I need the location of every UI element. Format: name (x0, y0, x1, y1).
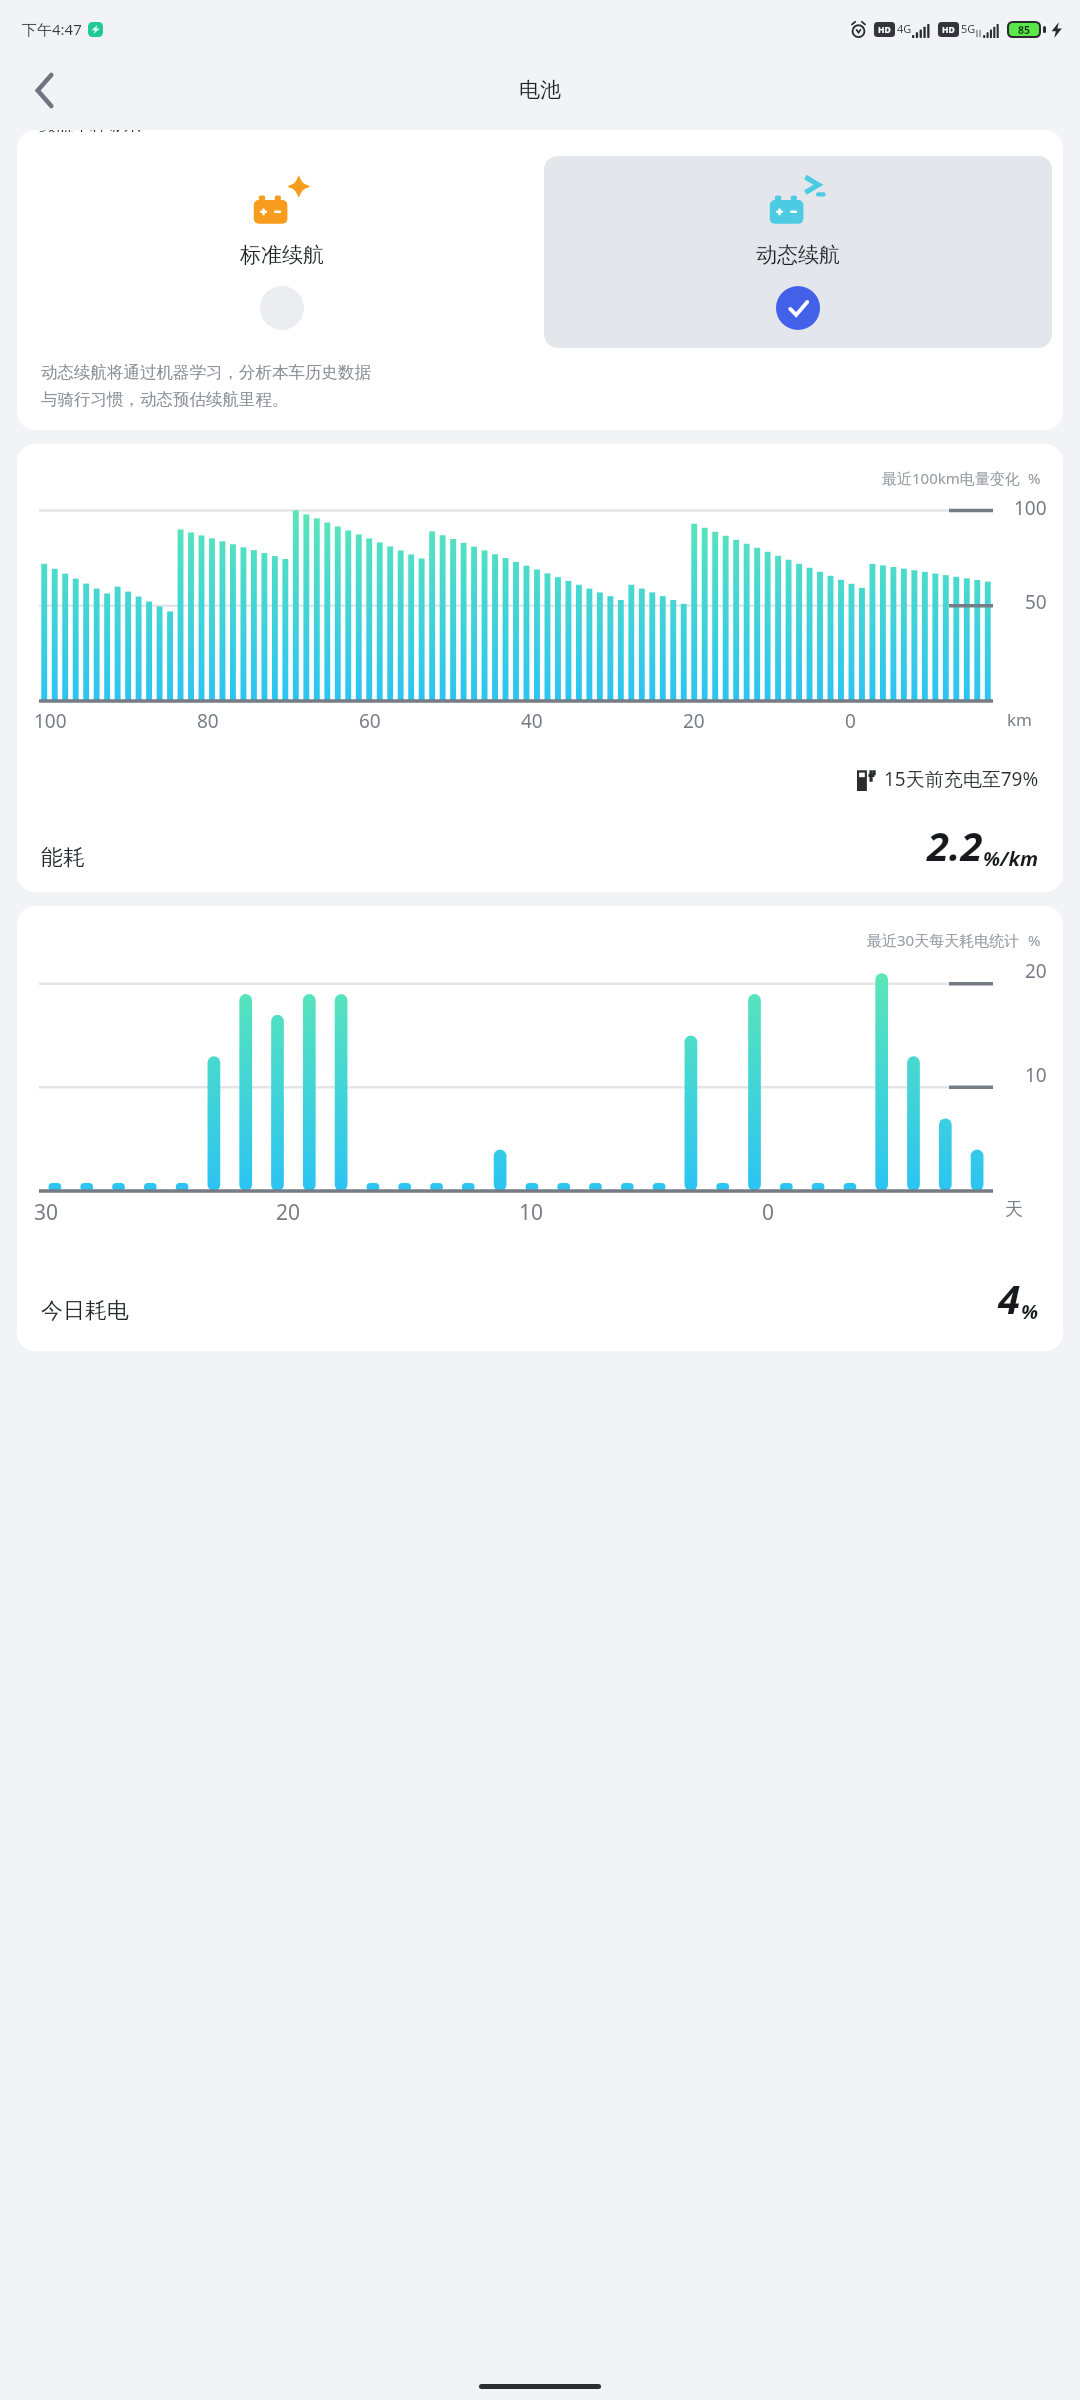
staticText: 20 (276, 1198, 301, 1227)
staticText: 0 (845, 708, 856, 734)
staticText: 2.2 (927, 818, 983, 872)
staticText: %/km (983, 845, 1039, 872)
staticText: % (1028, 468, 1041, 488)
staticText: 今日耗电 (41, 1297, 129, 1325)
staticText: HD (878, 24, 891, 36)
button[interactable]: 标准续航 (28, 156, 536, 348)
staticText: 电池 (519, 77, 561, 103)
staticText: 续航里程显示 (39, 130, 141, 132)
staticText: 下午4:47 (22, 19, 82, 39)
staticText: 天 (1005, 1198, 1023, 1221)
staticText: 能耗 (41, 844, 85, 872)
staticText: 10 (519, 1198, 544, 1227)
staticText: 10 (1025, 1062, 1047, 1088)
staticText: HD (942, 24, 955, 36)
staticText: 最近100km电量变化 (882, 468, 1020, 488)
staticText: % (1021, 1298, 1039, 1325)
staticText: 20 (683, 708, 705, 734)
staticText: % (1028, 930, 1041, 950)
staticText: 60 (359, 708, 381, 734)
staticText: 0 (762, 1198, 775, 1227)
staticText: 85 (1018, 23, 1031, 36)
staticText: 动态续航将通过机器学习，分析本车历史数据 与骑行习惯，动态预估续航里程。 (41, 362, 371, 410)
staticText: 15天前充电至79% (884, 766, 1039, 792)
staticText: 30 (34, 1198, 59, 1227)
staticText: 动态续航 (756, 242, 840, 268)
staticText: 最近30天每天耗电统计 (867, 930, 1020, 950)
staticText: 20 (1025, 958, 1047, 984)
staticText: 标准续航 (240, 242, 324, 268)
button[interactable]: 返回 (18, 64, 70, 116)
staticText: 100 (34, 708, 67, 734)
staticText: 50 (1025, 589, 1047, 615)
staticText: 5G (961, 21, 976, 36)
button[interactable]: 动态续航 (544, 156, 1052, 348)
staticText: km (1007, 708, 1032, 731)
staticText: 40 (521, 708, 543, 734)
staticText: 4 (998, 1271, 1021, 1325)
staticText: 100 (1014, 495, 1047, 521)
staticText: 80 (197, 708, 219, 734)
staticText: 4G (897, 21, 912, 36)
